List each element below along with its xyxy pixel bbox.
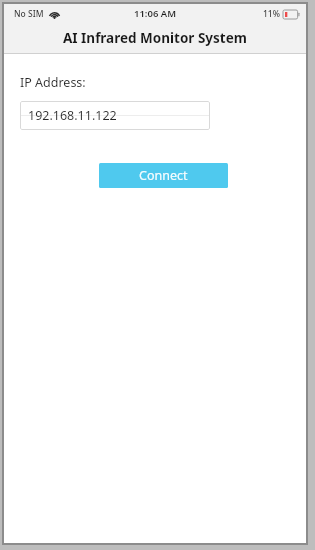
staticText: 192.168.11.122 xyxy=(28,107,117,124)
staticText: IP Address: xyxy=(20,74,86,91)
staticText: AI Infrared Monitor System xyxy=(63,29,247,47)
staticText: 11:06 AM xyxy=(134,7,177,20)
button[interactable]: Connect xyxy=(99,163,228,188)
button[interactable]: 192.168.11.122 xyxy=(20,101,210,130)
staticText: 11% xyxy=(263,8,280,20)
staticText: Connect xyxy=(139,167,188,184)
staticText: No SIM xyxy=(14,8,44,20)
